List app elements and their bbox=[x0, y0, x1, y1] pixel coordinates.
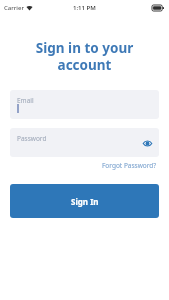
button[interactable]: Forgot Password? bbox=[100, 159, 159, 172]
staticText: 1:11 PM bbox=[73, 4, 96, 12]
button[interactable]: Password bbox=[10, 128, 159, 157]
staticText: Carrier bbox=[4, 4, 24, 12]
button[interactable]: Sign In bbox=[10, 184, 159, 218]
staticText: Forgot Password? bbox=[102, 161, 157, 170]
staticText: Sign In bbox=[71, 196, 99, 207]
staticText: Password bbox=[17, 134, 47, 143]
staticText: Sign in to your account bbox=[16, 39, 153, 74]
button[interactable]: Show password bbox=[141, 137, 153, 149]
staticText: Email bbox=[17, 96, 34, 105]
button[interactable]: Email bbox=[10, 90, 159, 119]
